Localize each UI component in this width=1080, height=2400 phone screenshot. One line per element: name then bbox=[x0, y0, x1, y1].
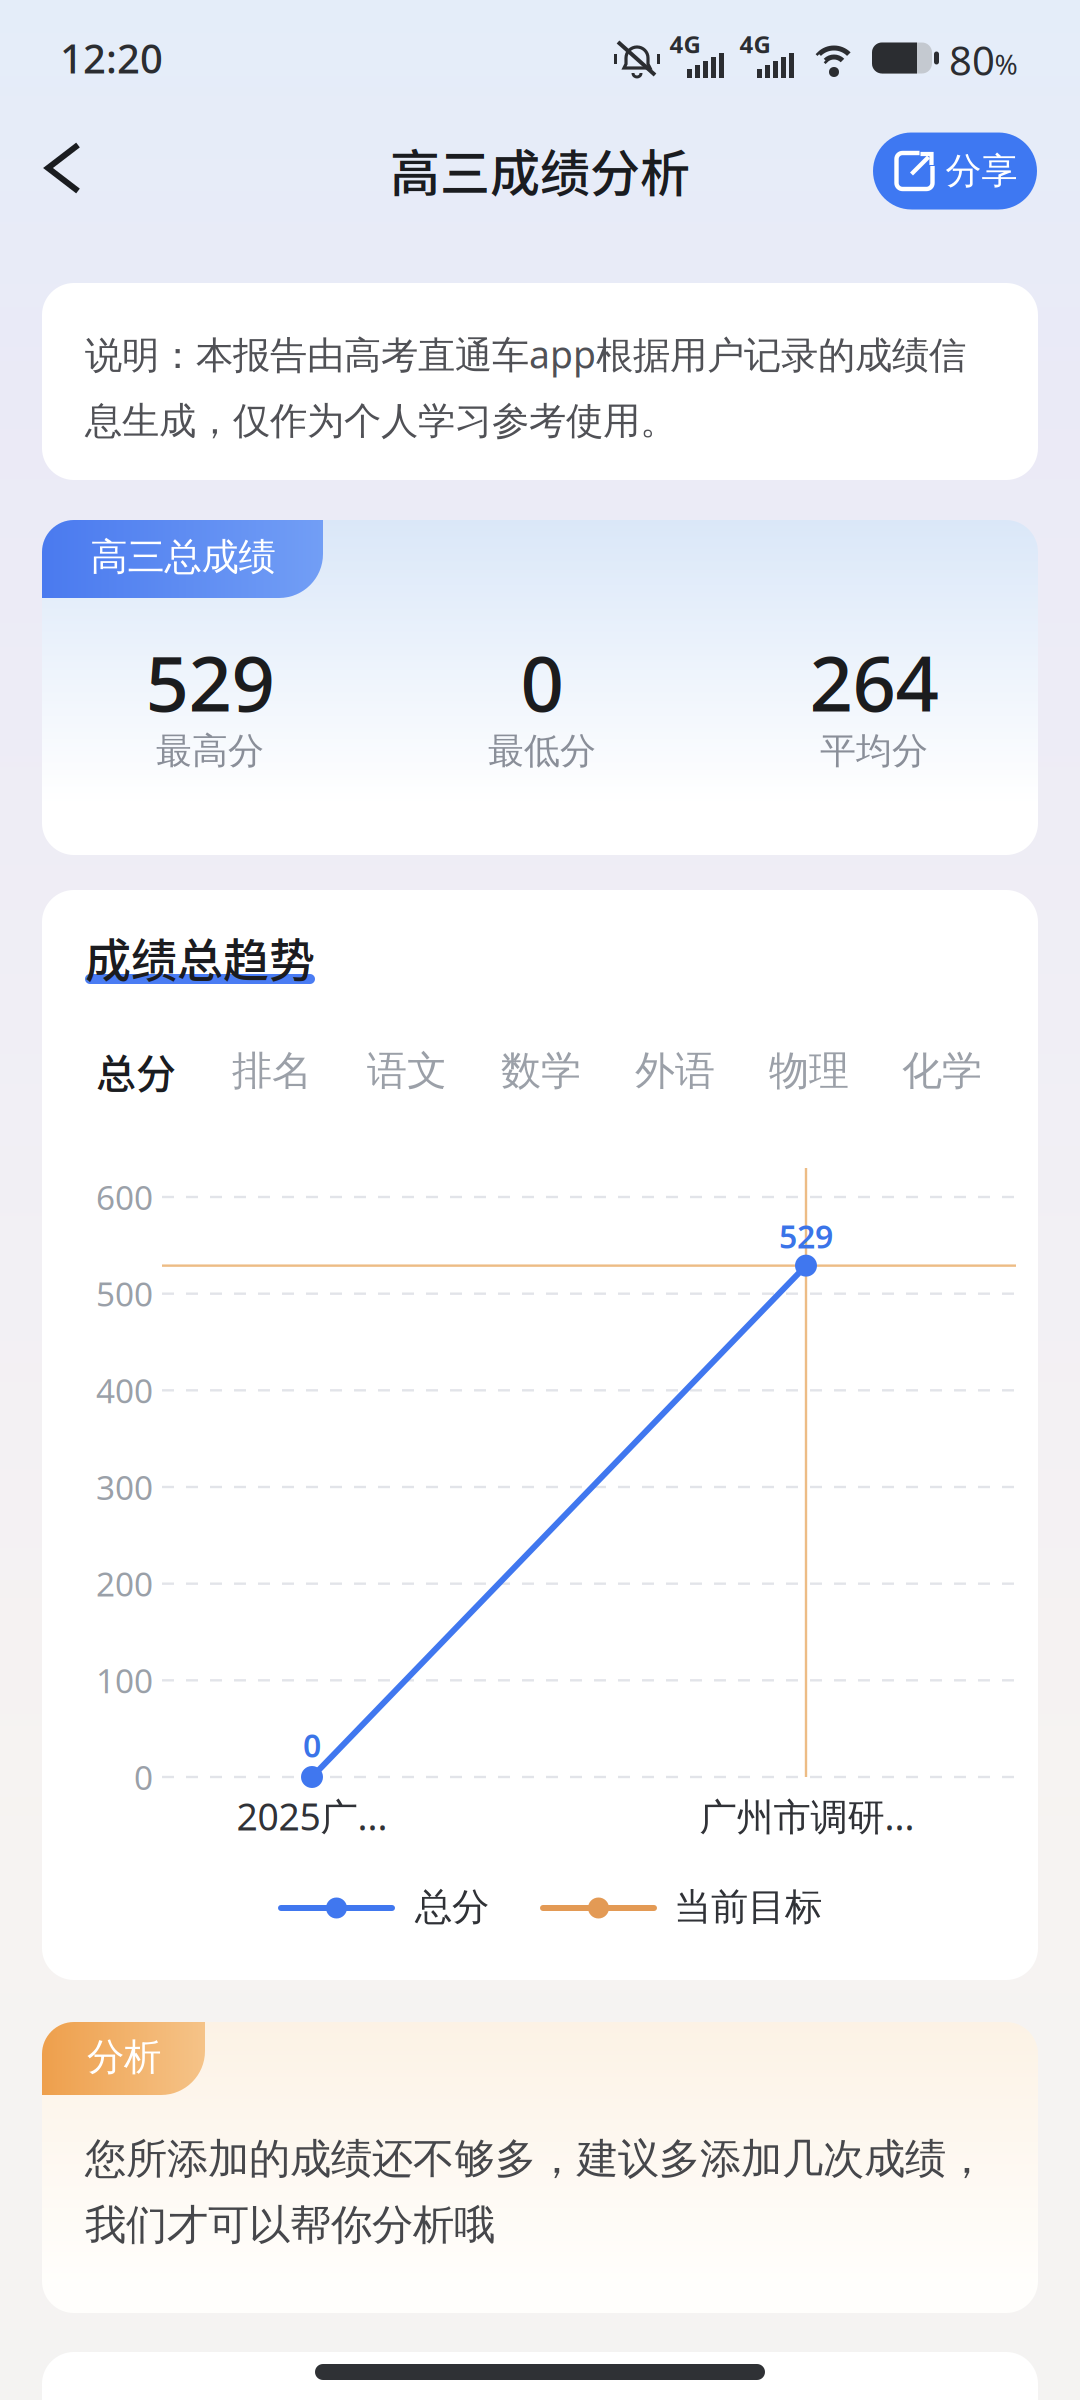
staticText: 2025广... bbox=[236, 1791, 387, 1841]
staticText: 分享 bbox=[945, 149, 1017, 193]
staticText: 平均分 bbox=[820, 729, 928, 773]
staticText: 高三成绩分析 bbox=[390, 134, 690, 206]
staticText: 说明：本报告由高考直通车app根据用户记录的成绩信 bbox=[85, 329, 966, 379]
button[interactable]: 数学 bbox=[486, 1039, 596, 1103]
staticText: 物理 bbox=[769, 1046, 849, 1095]
staticText: 语文 bbox=[367, 1046, 447, 1095]
staticText: 100 bbox=[96, 1658, 153, 1702]
staticText: 264 bbox=[809, 631, 938, 732]
staticText: 最高分 bbox=[156, 729, 264, 773]
staticText: 总分 bbox=[415, 1884, 489, 1930]
staticText: 529 bbox=[779, 1215, 833, 1257]
staticText: 400 bbox=[96, 1368, 153, 1412]
staticText: 0 bbox=[520, 631, 563, 732]
staticText: 200 bbox=[96, 1561, 153, 1606]
staticText: 成绩总趋势 bbox=[85, 924, 315, 990]
button[interactable]: 分享 bbox=[873, 132, 1037, 209]
button[interactable]: 排名 bbox=[217, 1039, 327, 1103]
staticText: 外语 bbox=[635, 1046, 715, 1095]
staticText: 排名 bbox=[232, 1046, 312, 1095]
staticText: 息生成，仅作为个人学习参考使用。 bbox=[85, 398, 677, 444]
staticText: 4G bbox=[669, 28, 700, 60]
button[interactable]: 语文 bbox=[352, 1039, 462, 1103]
staticText: 总分 bbox=[96, 1042, 176, 1100]
staticText: 化学 bbox=[902, 1046, 982, 1095]
staticText: 我们才可以帮你分析哦 bbox=[85, 2200, 495, 2250]
staticText: 600 bbox=[96, 1175, 153, 1219]
staticText: 300 bbox=[96, 1465, 153, 1509]
staticText: 80 bbox=[949, 33, 995, 86]
staticText: 12:20 bbox=[60, 31, 163, 84]
staticText: 最低分 bbox=[488, 729, 596, 773]
button[interactable]: 化学 bbox=[887, 1039, 997, 1103]
staticText: 数学 bbox=[501, 1046, 581, 1095]
button[interactable]: Back bbox=[44, 142, 84, 194]
staticText: 当前目标 bbox=[674, 1884, 822, 1930]
staticText: 您所添加的成绩还不够多，建议多添加几次成绩， bbox=[85, 2134, 987, 2184]
staticText: 0 bbox=[134, 1755, 153, 1799]
staticText: 分析 bbox=[87, 2034, 161, 2080]
staticText: 4G bbox=[739, 28, 770, 60]
button[interactable]: 外语 bbox=[620, 1039, 730, 1103]
staticText: 0 bbox=[303, 1724, 321, 1766]
staticText: 500 bbox=[96, 1271, 153, 1316]
staticText: 广州市调研... bbox=[699, 1791, 914, 1841]
staticText: 高三总成绩 bbox=[90, 534, 275, 580]
staticText: % bbox=[994, 45, 1017, 83]
staticText: 529 bbox=[145, 631, 274, 732]
button[interactable]: 总分 bbox=[81, 1039, 191, 1103]
button[interactable]: 物理 bbox=[754, 1039, 864, 1103]
